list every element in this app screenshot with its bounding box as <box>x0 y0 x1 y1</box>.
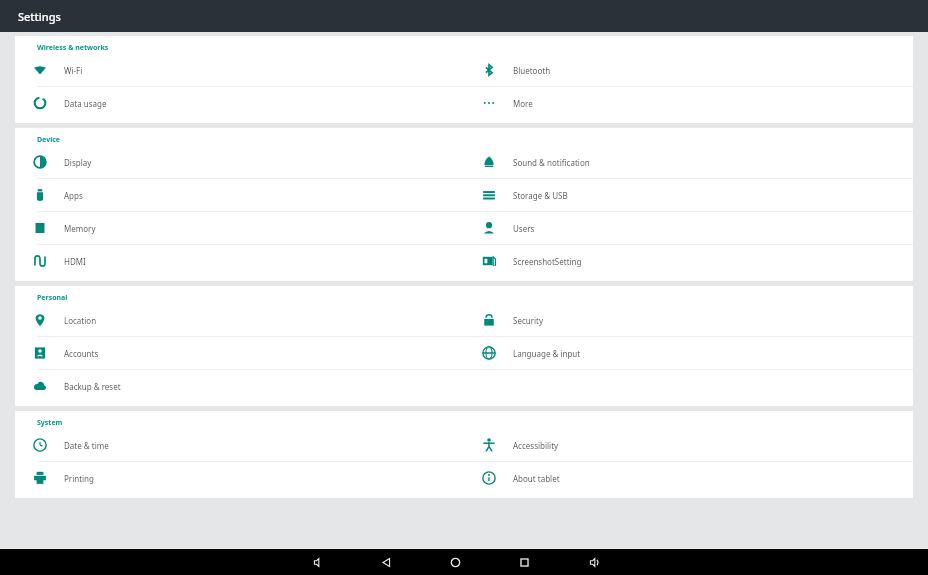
button[interactable]: Security <box>464 304 913 336</box>
button[interactable]: Language & input <box>464 337 913 369</box>
staticText: Storage & USB <box>513 190 568 201</box>
staticText: Printing <box>64 473 94 484</box>
staticText: Sound & notification <box>513 157 590 168</box>
button[interactable]: Volume down <box>308 553 327 572</box>
button[interactable]: Recents <box>515 553 534 572</box>
staticText: Wireless & networks <box>37 43 109 53</box>
button[interactable]: Bluetooth <box>464 54 913 86</box>
staticText: HDMI <box>64 256 86 267</box>
button[interactable]: Volume up <box>584 553 603 572</box>
staticText: Users <box>513 223 535 234</box>
staticText: Memory <box>64 223 96 234</box>
button[interactable]: Storage & USB <box>464 179 913 211</box>
staticText: Wi-Fi <box>64 65 83 76</box>
button[interactable]: Backup & reset <box>15 370 464 402</box>
button[interactable]: Home <box>446 553 465 572</box>
staticText: Accessibility <box>513 440 559 451</box>
staticText: Apps <box>64 190 83 201</box>
button[interactable]: Accessibility <box>464 429 913 461</box>
button[interactable]: Location <box>15 304 464 336</box>
button[interactable]: Accounts <box>15 337 464 369</box>
button[interactable]: More <box>464 87 913 119</box>
staticText: Security <box>513 315 544 326</box>
button[interactable]: Memory <box>15 212 464 244</box>
button[interactable]: Date & time <box>15 429 464 461</box>
button[interactable]: HDMI <box>15 245 464 277</box>
staticText: Display <box>64 157 92 168</box>
button[interactable]: Apps <box>15 179 464 211</box>
button[interactable]: Display <box>15 146 464 178</box>
staticText: Device <box>37 135 61 145</box>
staticText: Language & input <box>513 348 581 359</box>
staticText: Settings <box>18 9 61 24</box>
staticText: Date & time <box>64 440 109 451</box>
staticText: Data usage <box>64 98 107 109</box>
staticText: More <box>513 98 533 109</box>
staticText: ScreenshotSetting <box>513 256 582 267</box>
staticText: Backup & reset <box>64 381 121 392</box>
button[interactable]: ScreenshotSetting <box>464 245 913 277</box>
button[interactable]: Printing <box>15 462 464 494</box>
staticText: About tablet <box>513 473 560 484</box>
button[interactable]: Data usage <box>15 87 464 119</box>
staticText: Location <box>64 315 97 326</box>
button[interactable]: Users <box>464 212 913 244</box>
button[interactable]: Sound & notification <box>464 146 913 178</box>
staticText: Accounts <box>64 348 99 359</box>
staticText: System <box>37 418 63 428</box>
button[interactable]: Back <box>377 553 396 572</box>
staticText: Bluetooth <box>513 65 551 76</box>
button[interactable]: Wi-Fi <box>15 54 464 86</box>
button[interactable]: About tablet <box>464 462 913 494</box>
staticText: Personal <box>37 293 68 303</box>
